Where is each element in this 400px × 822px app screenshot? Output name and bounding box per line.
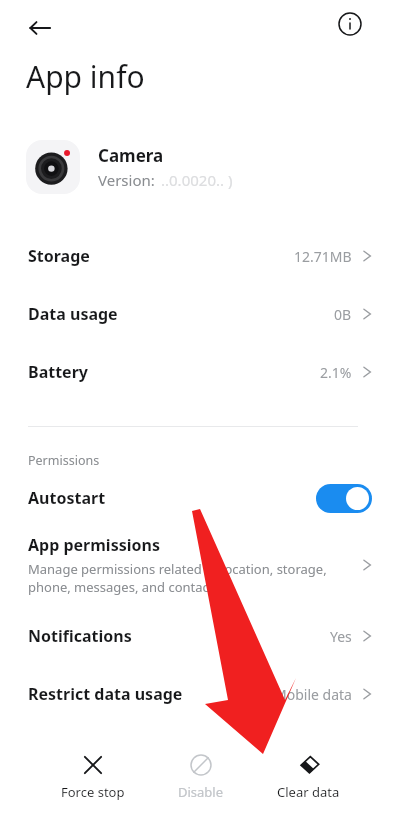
- button[interactable]: Autostart: [0, 478, 400, 518]
- staticText: 0B: [334, 305, 352, 324]
- staticText: 2.1%: [320, 363, 352, 382]
- staticText: Permissions: [28, 452, 100, 469]
- staticText: Yes: [330, 627, 352, 646]
- staticText: Storage: [28, 245, 90, 267]
- staticText: Force stop: [61, 783, 125, 801]
- button[interactable]: Storage: [0, 236, 400, 276]
- staticText: 12.71MB: [294, 247, 352, 266]
- staticText: ..0.0020.. ): [161, 170, 233, 190]
- button[interactable]: App permissions: [0, 534, 400, 596]
- staticText: App permissions: [28, 534, 160, 556]
- button[interactable]: Notifications: [0, 616, 400, 656]
- staticText: Battery: [28, 361, 88, 383]
- button[interactable]: App details info: [326, 0, 374, 48]
- button[interactable]: Clear data: [271, 740, 346, 815]
- staticText: Version:: [98, 170, 155, 190]
- staticText: Restrict data usage: [28, 683, 183, 705]
- staticText: Clear data: [277, 783, 340, 801]
- staticText: Mobile data: [274, 685, 352, 704]
- button[interactable]: Restrict data usage: [0, 674, 400, 714]
- button[interactable]: Battery: [0, 352, 400, 392]
- button[interactable]: Back: [16, 4, 64, 52]
- button[interactable]: Force stop: [55, 740, 131, 815]
- staticText: Notifications: [28, 625, 132, 647]
- staticText: Disable: [178, 783, 224, 801]
- staticText: Data usage: [28, 303, 118, 325]
- button[interactable]: Camera: [26, 140, 374, 194]
- staticText: Autostart: [28, 487, 106, 509]
- staticText: App info: [26, 56, 145, 97]
- button[interactable]: Disable: [172, 740, 230, 815]
- staticText: Manage permissions related to location, …: [28, 560, 327, 596]
- staticText: Camera: [98, 144, 164, 167]
- button[interactable]: Data usage: [0, 294, 400, 334]
